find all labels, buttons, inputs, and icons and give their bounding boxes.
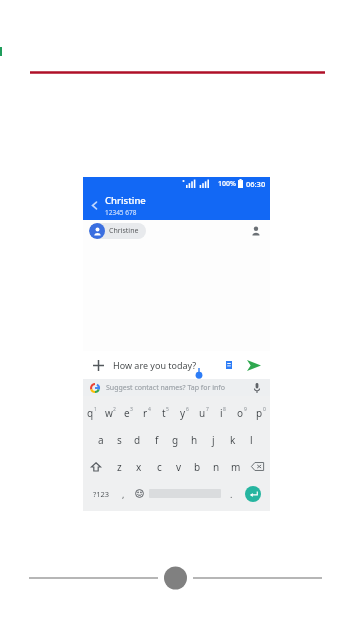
button[interactable]: k — [223, 426, 242, 453]
staticText: 9 — [244, 406, 247, 413]
staticText: 8 — [223, 406, 226, 413]
staticText: r — [143, 406, 148, 420]
staticText: 06:30 — [246, 179, 266, 189]
staticText: m — [231, 460, 241, 474]
staticText: 0 — [263, 406, 266, 413]
button[interactable]: b — [188, 453, 207, 480]
staticText: i — [220, 406, 223, 420]
staticText: o — [237, 406, 244, 420]
button[interactable]: q — [83, 399, 101, 426]
button[interactable]: i — [213, 399, 232, 426]
button[interactable]: z — [109, 453, 129, 480]
staticText: x — [136, 460, 142, 474]
button[interactable]: c — [149, 453, 169, 480]
staticText: t — [162, 406, 166, 420]
staticText: z — [117, 460, 122, 474]
staticText: How are you today? — [113, 359, 197, 371]
staticText: u — [199, 406, 206, 420]
button[interactable]: Shift — [83, 453, 109, 480]
button[interactable]: v — [169, 453, 188, 480]
staticText: . — [230, 488, 233, 500]
button[interactable]: o — [232, 399, 251, 426]
staticText: 1 — [94, 406, 97, 413]
button[interactable]: a — [92, 426, 110, 453]
staticText: 2 — [113, 406, 116, 413]
button[interactable]: w — [101, 399, 119, 426]
staticText: g — [172, 433, 179, 447]
staticText: Christine — [109, 226, 139, 236]
button[interactable]: Emoji — [131, 480, 147, 507]
staticText: n — [213, 460, 220, 474]
staticText: 5 — [166, 406, 169, 413]
button[interactable]: Attach file — [221, 357, 237, 373]
button[interactable]: r — [137, 399, 156, 426]
staticText: 7 — [206, 406, 209, 413]
staticText: Christine — [105, 194, 146, 207]
button[interactable]: l — [242, 426, 261, 453]
button[interactable]: m — [226, 453, 245, 480]
button[interactable]: y — [175, 399, 194, 426]
staticText: q — [87, 406, 94, 420]
button[interactable]: How are you today? — [113, 359, 221, 371]
button[interactable]: , — [115, 480, 131, 507]
button[interactable]: p — [251, 399, 270, 426]
button[interactable]: Back — [83, 194, 105, 216]
button[interactable]: s — [110, 426, 128, 453]
staticText: p — [256, 406, 263, 420]
staticText: a — [98, 433, 104, 447]
button[interactable]: e — [119, 399, 137, 426]
staticText: v — [176, 460, 182, 474]
button[interactable]: j — [204, 426, 223, 453]
button[interactable]: h — [185, 426, 204, 453]
button[interactable]: Backspace — [245, 453, 270, 480]
button[interactable]: Christine — [105, 194, 270, 217]
staticText: s — [117, 433, 122, 447]
staticText: 4 — [148, 406, 151, 413]
staticText: , — [122, 488, 125, 500]
button[interactable]: Send — [245, 356, 263, 374]
staticText: y — [180, 406, 186, 420]
button[interactable]: Voice input — [251, 382, 263, 394]
button[interactable]: x — [129, 453, 149, 480]
staticText: ?123 — [93, 489, 110, 499]
button[interactable]: Enter — [245, 486, 261, 502]
staticText: 6 — [186, 406, 189, 413]
staticText: 12345 678 — [105, 208, 137, 217]
staticText: c — [157, 460, 162, 474]
staticText: 3 — [130, 406, 133, 413]
button[interactable]: Suggest contact names? Tap for info — [90, 379, 263, 396]
button[interactable]: Add contact — [248, 223, 264, 239]
button[interactable]: t — [156, 399, 175, 426]
button[interactable]: ?123 — [87, 480, 115, 507]
button[interactable]: . — [223, 480, 239, 507]
staticText: 100% — [218, 179, 236, 189]
button[interactable]: Christine — [89, 223, 146, 239]
staticText: j — [212, 433, 215, 447]
button[interactable]: g — [166, 426, 185, 453]
staticText: h — [191, 433, 198, 447]
staticText: e — [124, 406, 130, 420]
staticText: f — [155, 433, 159, 447]
button[interactable]: n — [207, 453, 226, 480]
button[interactable]: f — [147, 426, 166, 453]
staticText: k — [230, 433, 236, 447]
staticText: l — [250, 433, 253, 447]
staticText: d — [134, 433, 141, 447]
staticText: Suggest contact names? Tap for info — [106, 383, 225, 393]
button[interactable]: u — [194, 399, 213, 426]
staticText: b — [194, 460, 201, 474]
staticText: w — [105, 406, 113, 420]
button[interactable]: Add attachment — [90, 357, 106, 373]
button[interactable]: d — [128, 426, 147, 453]
